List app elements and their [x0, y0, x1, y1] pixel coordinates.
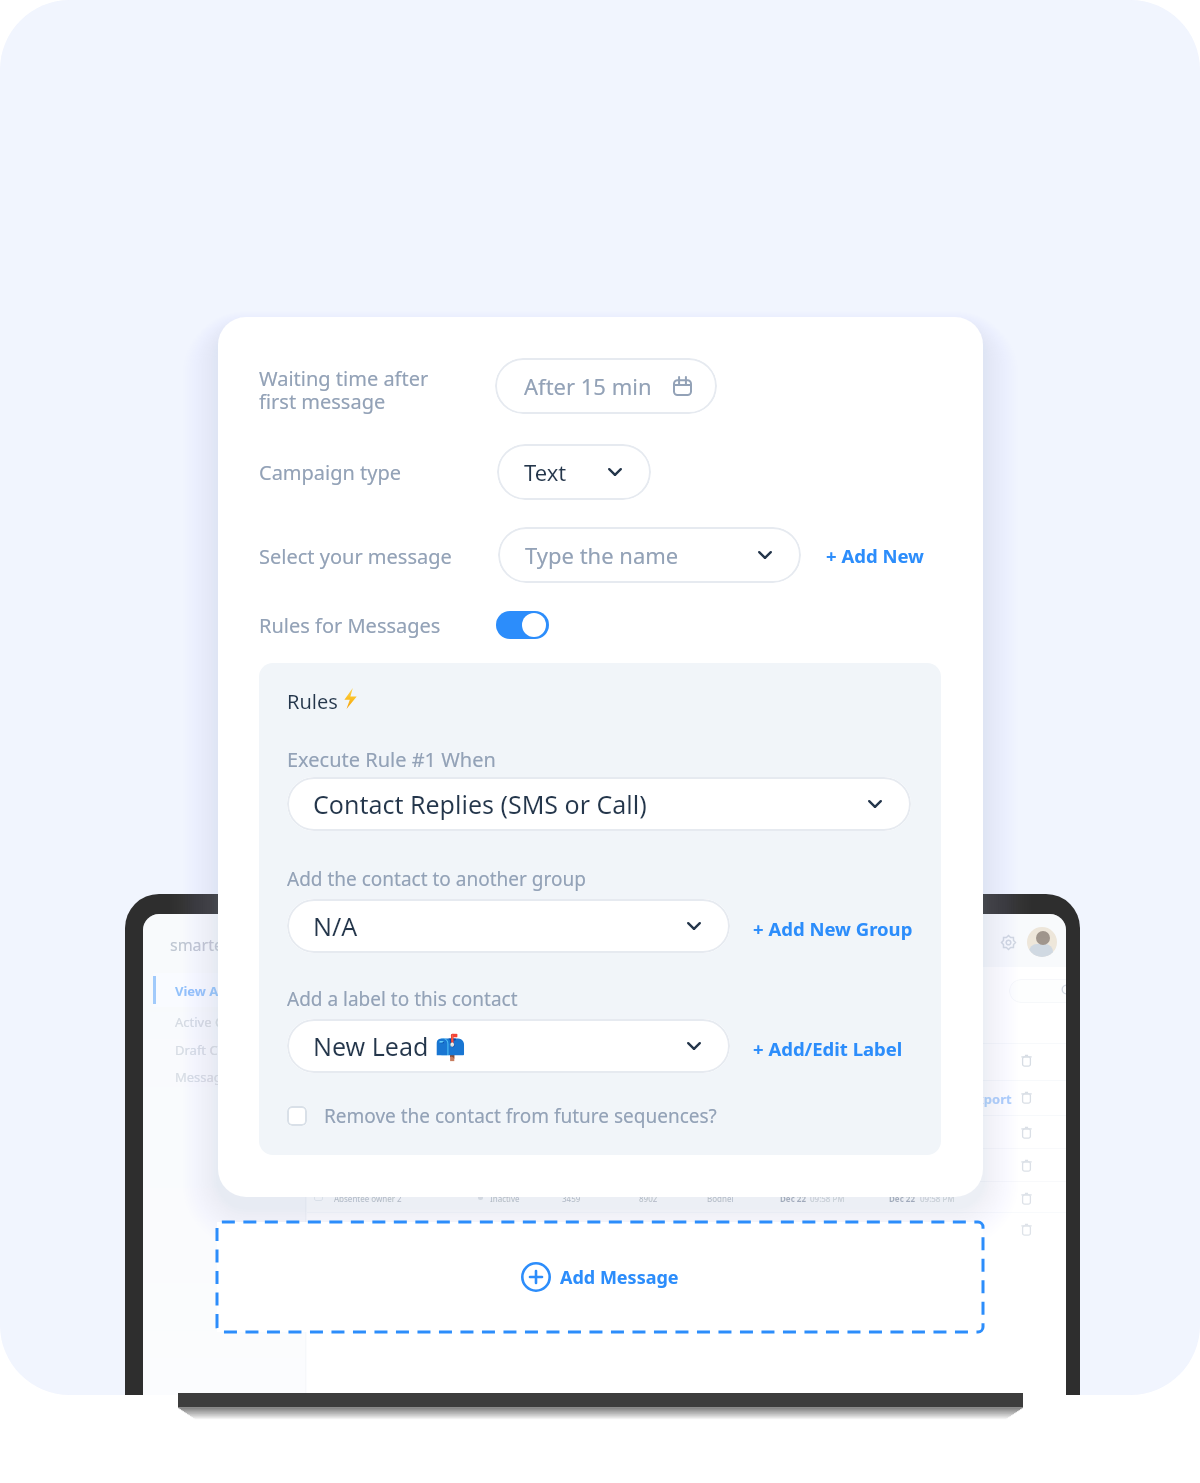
staticText: Text	[524, 457, 567, 487]
staticText: Contact Replies (SMS or Call)	[313, 787, 647, 821]
staticText: 09:58 PM	[920, 1193, 955, 1204]
staticText: Add Message	[560, 1265, 679, 1290]
staticText: Draft Campaigns	[175, 1041, 278, 1059]
staticText: 3459	[562, 1193, 581, 1204]
staticText: Dec 22	[889, 1193, 915, 1204]
staticText: Message Templates	[175, 1068, 296, 1086]
staticText: Inactive	[490, 1193, 520, 1204]
staticText: Type the name	[525, 540, 679, 570]
staticText: Add a label to this contact	[287, 986, 518, 1012]
staticText: Select your message	[259, 543, 452, 570]
staticText: Dec 22	[780, 1193, 806, 1204]
button[interactable]: Rules for Messages toggle	[496, 611, 549, 639]
staticText: N/A	[313, 909, 358, 943]
button[interactable]: + Add New Group	[753, 916, 913, 941]
staticText: Rules for Messages	[259, 612, 441, 639]
staticText: Add the contact to another group	[287, 866, 586, 892]
staticText: Rules	[287, 688, 338, 715]
button[interactable]: Remove the contact from future sequences…	[287, 1103, 717, 1129]
button[interactable]: New Lead 📫	[287, 1019, 730, 1073]
button[interactable]: Contact Replies (SMS or Call)	[287, 777, 911, 831]
button[interactable]: Add Message	[217, 1222, 983, 1332]
staticText: Waiting time after first message	[259, 365, 429, 415]
staticText: Campaign type	[259, 459, 402, 486]
button[interactable]: N/A	[287, 899, 730, 953]
staticText: Absentee owner 2	[334, 1193, 402, 1204]
staticText: Execute Rule #1 When	[287, 746, 496, 773]
button[interactable]: Text	[497, 444, 651, 500]
staticText: New Lead 📫	[313, 1029, 466, 1063]
staticText: Bodnei	[707, 1193, 734, 1204]
button[interactable]: After 15 min	[495, 358, 717, 414]
staticText: + Add New Group	[753, 916, 913, 941]
staticText: Active Campaigns	[175, 1013, 284, 1031]
staticText: 8902	[639, 1193, 658, 1204]
button[interactable]: Type the name	[498, 527, 801, 583]
staticText: After 15 min	[524, 371, 652, 401]
staticText: 09:58 PM	[810, 1193, 845, 1204]
button[interactable]: + Add New	[826, 543, 924, 568]
staticText: Remove the contact from future sequences…	[324, 1103, 717, 1129]
staticText: + Add New	[826, 543, 924, 568]
button[interactable]: + Add/Edit Label	[753, 1036, 903, 1061]
staticText: View All (12)	[175, 982, 254, 1000]
staticText: smarter	[170, 934, 230, 956]
staticText: Export	[969, 1090, 1012, 1108]
staticText: + Add/Edit Label	[753, 1036, 903, 1061]
